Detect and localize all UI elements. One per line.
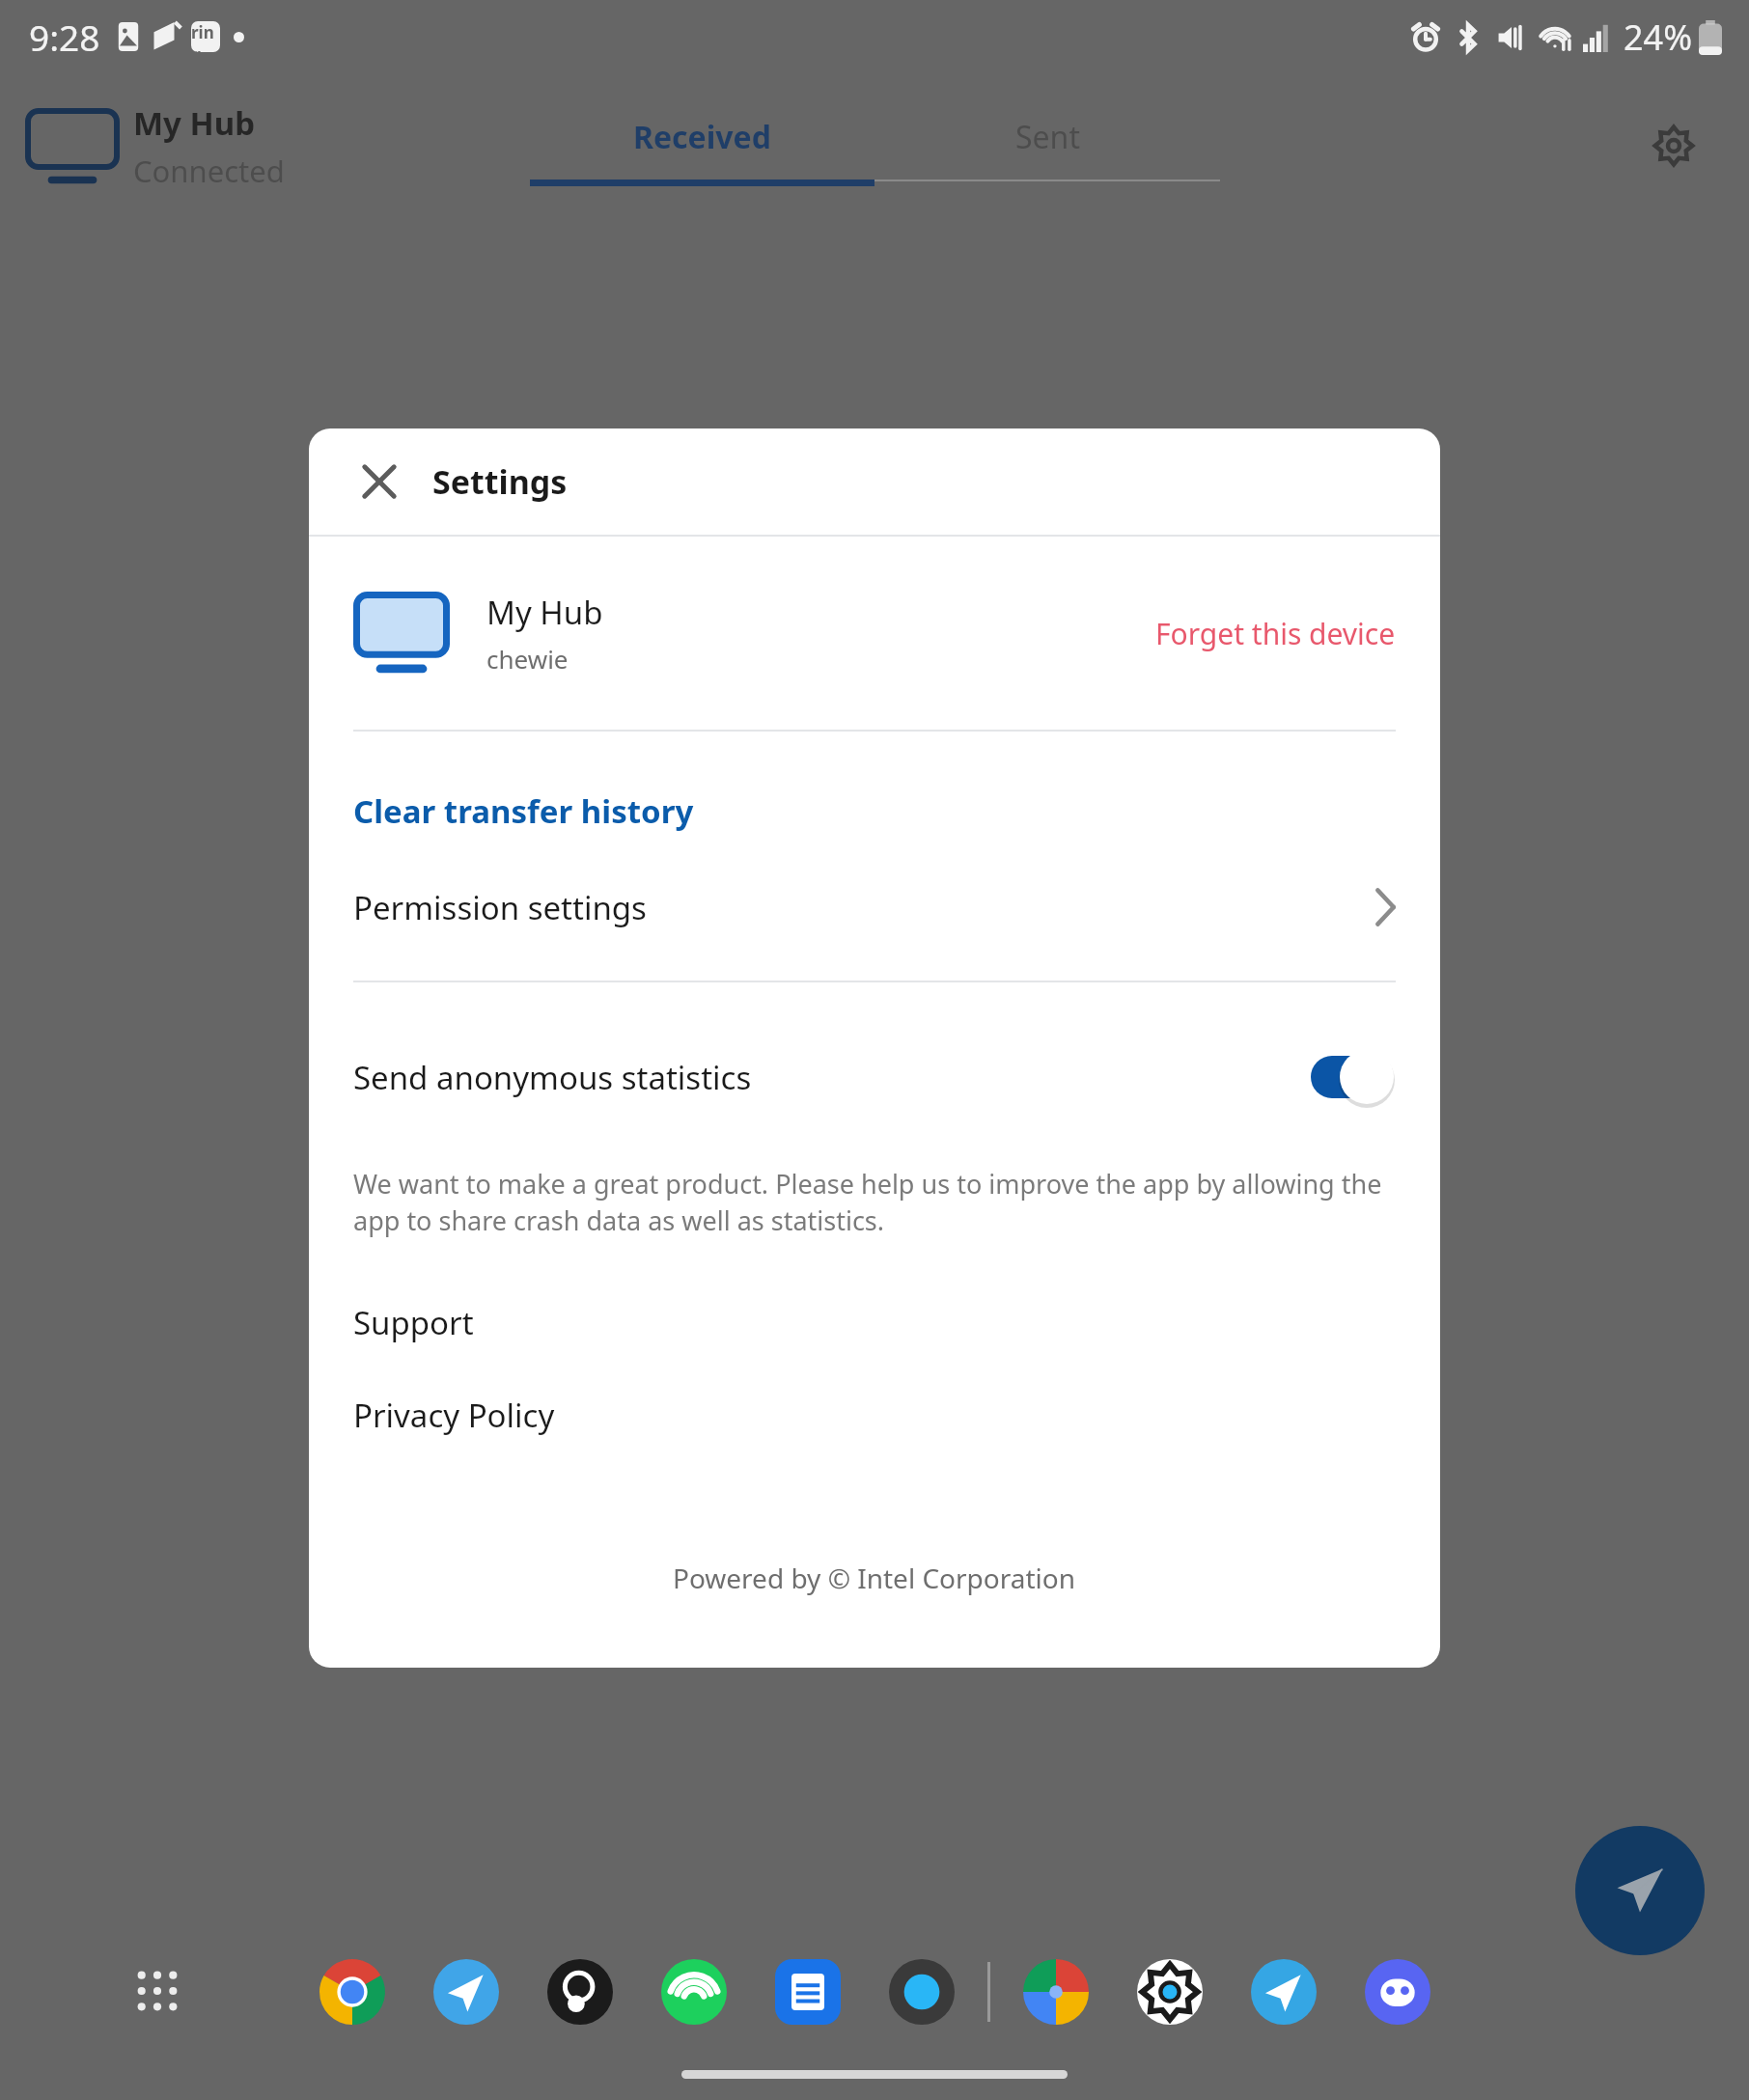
staticText: We want to make a great product. Please … bbox=[353, 1166, 1396, 1238]
staticText: Sent bbox=[1015, 116, 1080, 158]
button[interactable]: My Hub bbox=[25, 101, 285, 191]
button[interactable]: Sent bbox=[874, 106, 1220, 181]
staticText: chewie bbox=[486, 642, 569, 676]
button[interactable]: My Hub bbox=[309, 537, 1440, 730]
staticText: ring bbox=[191, 21, 220, 52]
staticText: Clear transfer history bbox=[353, 789, 694, 833]
staticText: Powered by © Intel Corporation bbox=[673, 1560, 1076, 1596]
button[interactable]: Settings bbox=[1639, 111, 1708, 180]
button[interactable]: Assistant bbox=[881, 1951, 962, 2032]
staticText: 9:28 bbox=[29, 13, 100, 61]
button[interactable]: All apps bbox=[124, 1957, 191, 2025]
staticText: My Hub bbox=[486, 591, 603, 634]
button[interactable]: Forget this device bbox=[1155, 614, 1396, 653]
button[interactable]: Close bbox=[349, 452, 409, 511]
staticText: Support bbox=[353, 1301, 474, 1344]
staticText: Forget this device bbox=[1155, 614, 1396, 653]
staticText: Settings bbox=[432, 459, 568, 504]
staticText: Privacy Policy bbox=[353, 1394, 555, 1437]
button[interactable]: Photos bbox=[1015, 1951, 1097, 2032]
button[interactable]: Permission settings bbox=[309, 870, 1440, 944]
button[interactable]: Privacy Policy bbox=[309, 1377, 1440, 1452]
button[interactable]: Telegram bbox=[1243, 1951, 1324, 2032]
button[interactable]: Clear transfer history bbox=[309, 776, 1440, 845]
button[interactable]: Chrome bbox=[312, 1951, 393, 2032]
button[interactable]: Send anonymous statistics bbox=[309, 1038, 1440, 1116]
button[interactable]: Messages bbox=[767, 1951, 848, 2032]
button[interactable]: Support bbox=[309, 1285, 1440, 1360]
staticText: My Hub bbox=[133, 101, 256, 145]
staticText: Permission settings bbox=[353, 886, 647, 929]
staticText: Send anonymous statistics bbox=[353, 1056, 752, 1099]
button[interactable]: Discord bbox=[1357, 1951, 1438, 2032]
staticText: 24% bbox=[1624, 14, 1693, 61]
staticText: Received bbox=[633, 116, 771, 158]
button[interactable]: Spotify bbox=[653, 1951, 735, 2032]
button[interactable]: Settings bbox=[1129, 1951, 1210, 2032]
button[interactable] bbox=[1311, 1050, 1396, 1104]
staticText: Connected bbox=[133, 151, 285, 191]
button[interactable]: Received bbox=[530, 106, 874, 186]
button[interactable]: Telegram Blue bbox=[426, 1951, 507, 2032]
button[interactable]: Steam bbox=[540, 1951, 621, 2032]
button[interactable]: Send bbox=[1575, 1826, 1705, 1955]
